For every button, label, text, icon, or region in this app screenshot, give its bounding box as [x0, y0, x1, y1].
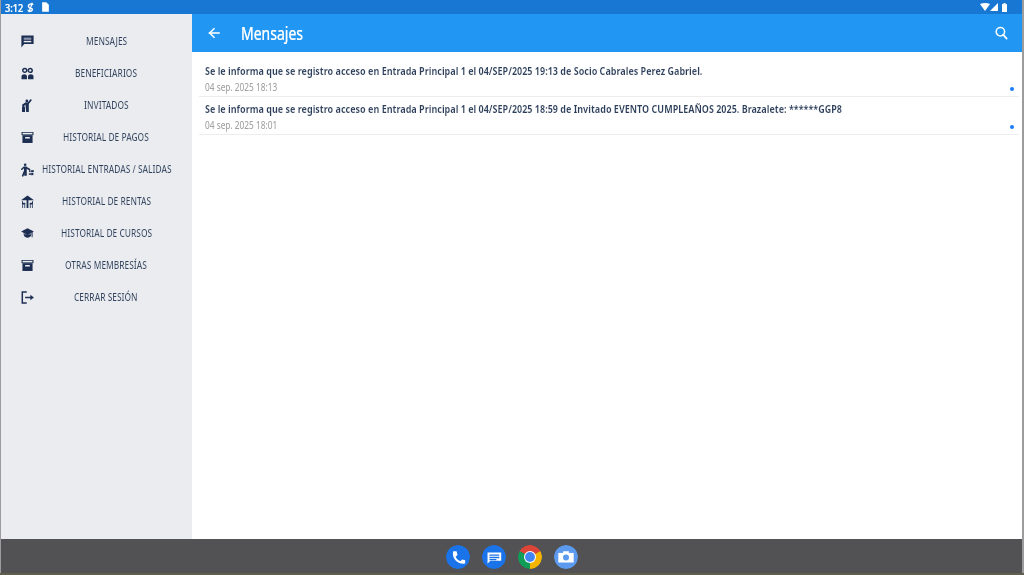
button[interactable]: BENEFICIARIOS: [0, 57, 192, 89]
staticText: 3:12: [5, 0, 23, 14]
staticText: HISTORIAL DE RENTAS: [62, 194, 152, 208]
staticText: 04 sep. 2025 18:13: [205, 80, 278, 94]
staticText: OTRAS MEMBRESÍAS: [65, 258, 147, 272]
button[interactable]: Se le informa que se registro acceso en …: [192, 59, 1024, 97]
button[interactable]: HISTORIAL DE CURSOS: [0, 217, 192, 249]
button[interactable]: Messages: [482, 545, 506, 569]
button[interactable]: OTRAS MEMBRESÍAS: [0, 249, 192, 281]
staticText: HISTORIAL ENTRADAS / SALIDAS: [42, 162, 172, 176]
staticText: BENEFICIARIOS: [75, 66, 137, 80]
button[interactable]: Back: [197, 14, 231, 52]
staticText: HISTORIAL DE CURSOS: [61, 226, 152, 240]
button[interactable]: Chrome: [518, 545, 542, 569]
button[interactable]: HISTORIAL DE RENTAS: [0, 185, 192, 217]
button[interactable]: Se le informa que se registro acceso en …: [192, 97, 1024, 135]
staticText: INVITADOS: [84, 98, 129, 112]
button[interactable]: INVITADOS: [0, 89, 192, 121]
button[interactable]: CERRAR SESIÓN: [0, 281, 192, 313]
staticText: MENSAJES: [86, 34, 128, 48]
button[interactable]: Search: [984, 14, 1018, 52]
staticText: 04 sep. 2025 18:01: [205, 118, 278, 132]
button[interactable]: Camera: [554, 545, 578, 569]
staticText: Mensajes: [241, 21, 303, 45]
staticText: Se le informa que se registro acceso en …: [205, 101, 843, 116]
staticText: HISTORIAL DE PAGOS: [63, 130, 149, 144]
staticText: CERRAR SESIÓN: [74, 290, 138, 304]
button[interactable]: HISTORIAL DE PAGOS: [0, 121, 192, 153]
button[interactable]: MENSAJES: [0, 25, 192, 57]
button[interactable]: HISTORIAL ENTRADAS / SALIDAS: [0, 153, 192, 185]
button[interactable]: Phone: [446, 545, 470, 569]
staticText: Se le informa que se registro acceso en …: [205, 63, 703, 78]
